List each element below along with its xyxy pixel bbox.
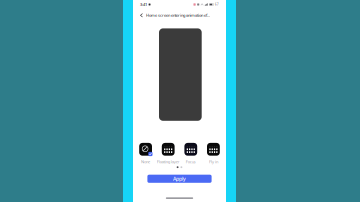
- staticText: Home screen entering animation ef…: [146, 13, 210, 18]
- button[interactable]: Focus: [184, 143, 197, 162]
- button[interactable]: Apply: [147, 175, 212, 183]
- button[interactable]: Floating layer: [162, 143, 175, 162]
- staticText: Fly in: [209, 159, 218, 164]
- button[interactable]: Fly in: [207, 143, 220, 162]
- staticText: Apply: [173, 175, 186, 182]
- staticText: 3:41: [140, 2, 147, 7]
- button[interactable]: Back: [137, 10, 146, 21]
- button[interactable]: None: [139, 143, 152, 162]
- staticText: Focus: [186, 159, 196, 164]
- staticText: None: [141, 159, 150, 164]
- staticText: Floating layer: [157, 159, 180, 164]
- staticText: 67: [215, 3, 219, 6]
